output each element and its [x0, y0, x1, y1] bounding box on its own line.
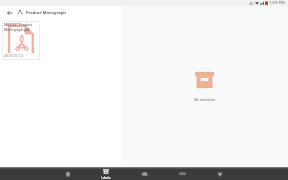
button[interactable]: Home [49, 167, 87, 180]
staticText: 2018-02-14 [4, 53, 23, 58]
staticText: 1:59 PM [269, 0, 285, 6]
staticText: MAVIRET Product Monograph.pdf [4, 22, 32, 32]
staticText: No selection [194, 97, 215, 102]
button[interactable]: MAVIRET Product Monograph.pdf [2, 21, 40, 60]
staticText: Product Monograph [26, 10, 66, 15]
button[interactable]: Mail [163, 167, 201, 180]
button[interactable]: Labels [87, 167, 125, 180]
button[interactable]: Cloud [125, 167, 163, 180]
button[interactable]: Back [4, 7, 15, 18]
staticText: Labels [101, 176, 111, 180]
staticText: 4G [249, 1, 254, 6]
button[interactable]: Favorites [201, 167, 239, 180]
